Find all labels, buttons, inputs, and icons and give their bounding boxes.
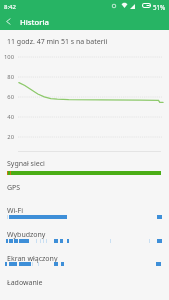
staticText: 100 <box>0 53 14 61</box>
button[interactable]: Ładowanie <box>0 275 169 298</box>
button[interactable]: Back <box>0 13 19 30</box>
button[interactable]: Wybudzony <box>0 227 169 250</box>
staticText: Ekran włączony <box>7 254 58 264</box>
button[interactable]: Wi-Fi <box>0 203 169 226</box>
staticText: Wi-Fi <box>7 206 24 216</box>
staticText: GPS <box>7 183 21 193</box>
staticText: Wybudzony <box>7 230 46 240</box>
staticText: 8:42 <box>4 3 16 11</box>
staticText: 20 <box>0 133 14 141</box>
staticText: Ładowanie <box>7 278 43 288</box>
staticText: Sygnał sieci <box>7 159 45 169</box>
staticText: 80 <box>0 73 14 81</box>
button[interactable]: Sygnał sieci <box>0 156 169 179</box>
button[interactable]: GPS <box>0 180 169 203</box>
button[interactable]: Ekran włączony <box>0 251 169 274</box>
staticText: 60 <box>0 93 14 101</box>
staticText: 40 <box>0 113 14 121</box>
staticText: 11 godz. 47 min 51 s na baterii <box>7 37 108 47</box>
staticText: Historia <box>20 17 49 27</box>
staticText: 51% <box>153 3 166 11</box>
